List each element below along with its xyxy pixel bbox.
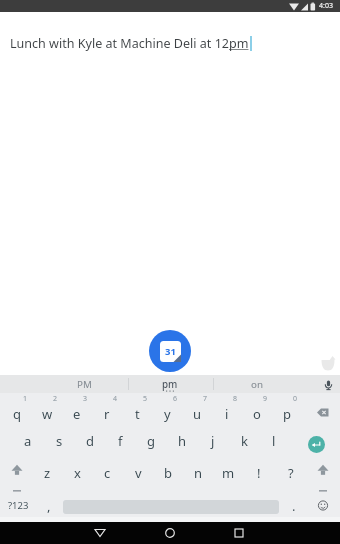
staticText: s	[56, 432, 63, 450]
staticText: q	[13, 405, 21, 423]
staticText: ,	[47, 497, 51, 515]
staticText: n	[194, 464, 203, 482]
staticText: z	[44, 464, 51, 482]
staticText: t	[135, 405, 140, 423]
button[interactable]: g	[136, 430, 166, 451]
staticText: a	[24, 432, 32, 450]
staticText: k	[241, 432, 248, 450]
button[interactable]: b	[153, 462, 183, 483]
button[interactable]: r	[92, 403, 122, 424]
staticText: w	[42, 405, 53, 423]
staticText: g	[147, 432, 155, 450]
staticText: b	[164, 464, 172, 482]
staticText: 5	[143, 394, 148, 403]
button[interactable]: d	[75, 430, 105, 451]
staticText: y	[164, 405, 171, 423]
button[interactable]: i	[212, 403, 242, 424]
staticText: o	[253, 405, 261, 423]
button[interactable]: o	[242, 403, 272, 424]
button[interactable]	[310, 495, 336, 517]
button[interactable]	[308, 436, 325, 453]
staticText: 31	[165, 345, 176, 358]
button[interactable]: t	[122, 403, 152, 424]
staticText: v	[135, 464, 142, 482]
staticText: pm	[162, 378, 178, 391]
staticText: c	[104, 464, 111, 482]
staticText: 9	[263, 394, 268, 403]
button[interactable]: pm	[150, 377, 190, 391]
staticText: u	[193, 405, 202, 423]
button[interactable]: .	[279, 495, 309, 516]
button[interactable]: 31	[149, 330, 191, 372]
staticText: 6	[173, 394, 178, 403]
staticText: .	[292, 497, 296, 515]
button[interactable]: s	[44, 430, 74, 451]
staticText: i	[225, 405, 229, 423]
staticText: 0	[293, 394, 298, 403]
staticText: !	[257, 464, 261, 482]
button[interactable]: a	[13, 430, 43, 451]
staticText: 1	[23, 394, 28, 403]
button[interactable]: l	[259, 430, 289, 451]
staticText: e	[73, 405, 81, 423]
button[interactable]: c	[92, 462, 122, 483]
button[interactable]	[308, 400, 338, 426]
button[interactable]: !	[244, 462, 274, 483]
button[interactable]: ?123	[2, 495, 34, 516]
button[interactable]: on	[237, 377, 277, 391]
button[interactable]	[225, 522, 253, 544]
button[interactable]: PM	[64, 377, 104, 391]
staticText: 2	[53, 394, 58, 403]
button[interactable]: ,	[34, 495, 64, 516]
button[interactable]: z	[32, 462, 62, 483]
staticText: r	[104, 405, 110, 423]
button[interactable]: w	[32, 403, 62, 424]
button[interactable]: q	[2, 403, 32, 424]
button[interactable]: e	[62, 403, 92, 424]
button[interactable]: v	[123, 462, 153, 483]
button[interactable]: j	[198, 430, 228, 451]
staticText: 3	[83, 394, 88, 403]
button[interactable]: f	[105, 430, 135, 451]
staticText: ?123	[8, 499, 29, 512]
staticText: x	[74, 464, 81, 482]
staticText: p	[283, 405, 291, 423]
staticText: on	[251, 378, 263, 391]
button[interactable]	[310, 460, 336, 486]
staticText: 8	[233, 394, 238, 403]
button[interactable]: Lunch with Kyle at Machine Deli at 12pm	[10, 35, 252, 52]
button[interactable]: x	[62, 462, 92, 483]
button[interactable]: p	[272, 403, 302, 424]
staticText: d	[86, 432, 94, 450]
button[interactable]: h	[167, 430, 197, 451]
button[interactable]: n	[183, 462, 213, 483]
button[interactable]: m	[213, 462, 243, 483]
staticText: 4:03	[319, 1, 333, 11]
staticText: 7	[203, 394, 208, 403]
button[interactable]	[156, 522, 184, 544]
button[interactable]	[4, 460, 30, 486]
button[interactable]: ?	[276, 462, 306, 483]
button[interactable]: k	[229, 430, 259, 451]
staticText: h	[178, 432, 187, 450]
staticText: m	[222, 464, 235, 482]
staticText: f	[118, 432, 123, 450]
staticText: PM	[77, 378, 92, 391]
staticText: l	[272, 432, 276, 450]
button[interactable]: y	[152, 403, 182, 424]
staticText: j	[211, 432, 215, 450]
button[interactable]: u	[182, 403, 212, 424]
staticText: 4	[113, 394, 118, 403]
button[interactable]	[86, 522, 114, 544]
staticText: Lunch with Kyle at Machine Deli at 12pm	[10, 35, 249, 52]
staticText: ?	[288, 464, 294, 482]
